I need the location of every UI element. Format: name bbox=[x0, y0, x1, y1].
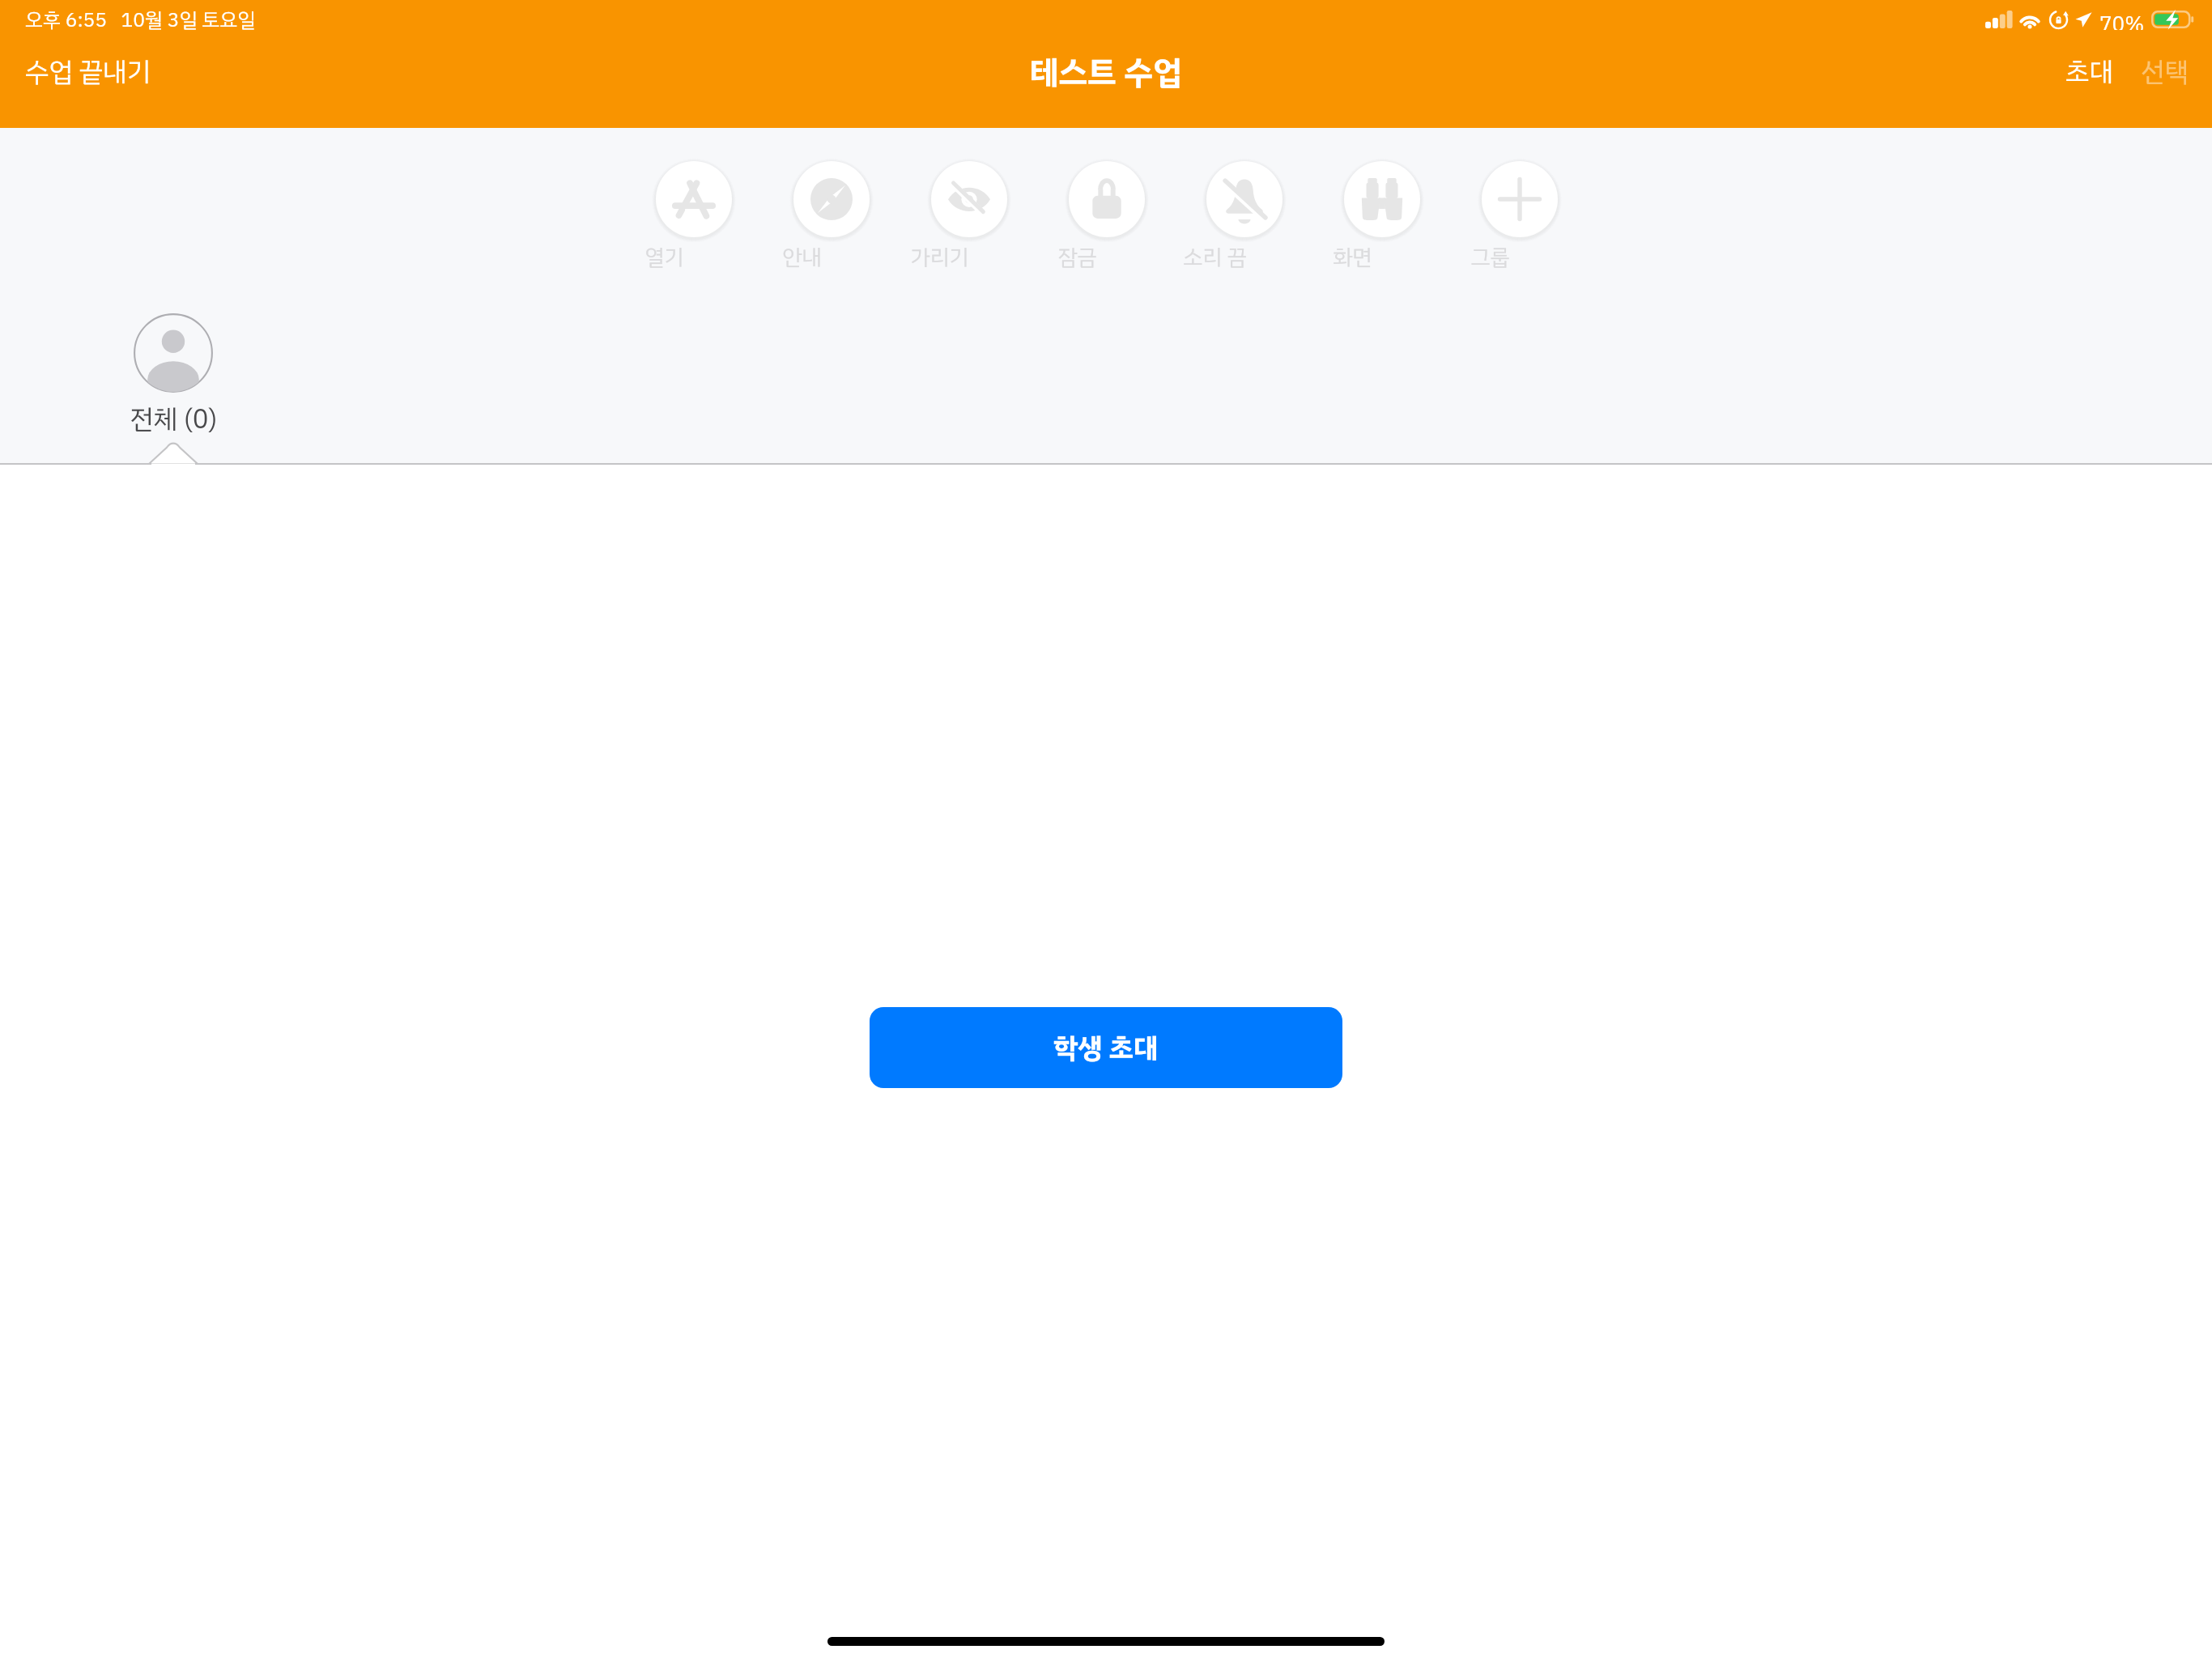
staticText: 70% bbox=[2099, 9, 2145, 30]
staticText: 그룹 bbox=[1470, 241, 1510, 274]
button[interactable]: 선택 bbox=[2136, 45, 2193, 99]
button[interactable]: 전체 (0) bbox=[110, 313, 236, 440]
button[interactable]: 잠금 bbox=[1068, 160, 1146, 274]
button[interactable]: 안내 bbox=[793, 160, 870, 274]
staticText: 화면 bbox=[1333, 241, 1372, 274]
button[interactable]: 그룹 bbox=[1481, 160, 1559, 274]
staticText: 수업 끝내기 bbox=[25, 52, 151, 92]
button[interactable]: 소리 끔 bbox=[1206, 160, 1283, 274]
staticText: 잠금 bbox=[1057, 241, 1097, 274]
staticText: 전체 (0) bbox=[130, 399, 218, 440]
staticText: 선택 bbox=[2141, 52, 2189, 92]
button[interactable]: 초대 bbox=[2061, 45, 2118, 99]
button[interactable]: 열기 bbox=[655, 160, 733, 274]
staticText: 테스트 수업 bbox=[1030, 49, 1182, 97]
staticText: 학생 초대 bbox=[1053, 1027, 1159, 1069]
button[interactable]: 학생 초대 bbox=[870, 1007, 1342, 1088]
staticText: 초대 bbox=[2065, 52, 2113, 92]
staticText: 열기 bbox=[644, 241, 684, 274]
staticText: 오후 6:55 10월 3일 토요일 bbox=[25, 5, 256, 35]
staticText: 안내 bbox=[782, 241, 822, 274]
button[interactable]: 화면 bbox=[1343, 160, 1421, 274]
staticText: 소리 끔 bbox=[1183, 241, 1247, 274]
button[interactable]: 수업 끝내기 bbox=[20, 45, 155, 99]
staticText: 가리기 bbox=[910, 241, 969, 274]
button[interactable]: 가리기 bbox=[930, 160, 1008, 274]
